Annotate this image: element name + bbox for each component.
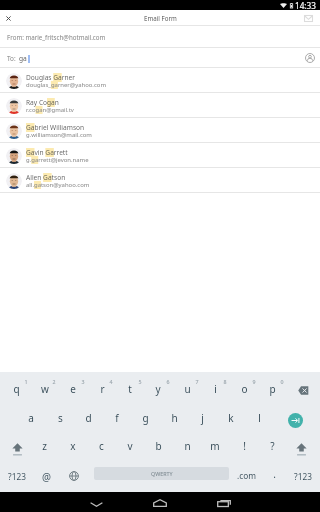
button[interactable]: o — [230, 376, 258, 402]
staticText: t — [128, 382, 132, 396]
button[interactable]: Gavin Garrett — [0, 143, 320, 168]
staticText: 14:33 — [295, 0, 316, 10]
button[interactable]: QWERTY — [94, 467, 229, 480]
staticText: 8 — [223, 378, 227, 385]
button[interactable]: c — [87, 433, 115, 459]
button[interactable]: Allen Gatson — [0, 168, 320, 193]
button[interactable]: l — [245, 405, 273, 431]
button[interactable]: h — [160, 405, 188, 431]
button[interactable]: 6 — [154, 368, 182, 394]
button[interactable]: Back — [64, 492, 128, 512]
button[interactable]: Next field — [288, 413, 303, 428]
staticText: 7 — [195, 378, 199, 385]
button[interactable]: 9 — [240, 368, 268, 394]
staticText: 2 — [52, 378, 56, 385]
staticText: j — [201, 411, 204, 425]
button[interactable]: Shift — [3, 436, 31, 462]
button[interactable]: n — [173, 433, 201, 459]
staticText: To: — [7, 54, 18, 63]
button[interactable]: s — [46, 405, 74, 431]
staticText: r.cogan@gmail.tv — [26, 106, 74, 114]
staticText: . — [273, 467, 276, 481]
button[interactable]: p — [258, 376, 286, 402]
button[interactable]: 4 — [97, 368, 125, 394]
button[interactable]: g — [131, 405, 159, 431]
button[interactable]: 5 — [126, 368, 154, 394]
button[interactable]: .com — [232, 462, 260, 488]
button[interactable]: Home — [128, 492, 192, 512]
button[interactable]: Backspace — [289, 377, 317, 403]
button[interactable]: j — [188, 405, 216, 431]
staticText: v — [127, 439, 133, 453]
staticText: Allen Gatson — [26, 173, 66, 182]
button[interactable]: . — [260, 461, 288, 487]
staticText: 1 — [24, 378, 28, 385]
button[interactable]: ?123 — [289, 463, 317, 489]
button[interactable]: ? — [258, 433, 286, 459]
button[interactable]: 0 — [268, 368, 296, 394]
button[interactable]: f — [103, 405, 131, 431]
button[interactable]: d — [74, 405, 102, 431]
button[interactable]: r — [88, 376, 116, 402]
button[interactable]: ! — [230, 433, 258, 459]
staticText: @ — [42, 470, 51, 484]
button[interactable]: 8 — [211, 368, 239, 394]
staticText: Douglas Garner — [26, 73, 75, 82]
button[interactable]: u — [173, 376, 201, 402]
staticText: From: marie_fritsch@hotmail.com — [7, 33, 106, 41]
button[interactable]: m — [201, 433, 229, 459]
button[interactable]: 1 — [12, 368, 40, 394]
button[interactable]: ?123 — [3, 463, 31, 489]
button[interactable]: x — [59, 433, 87, 459]
staticText: m — [210, 439, 220, 453]
button[interactable]: Change language — [60, 463, 88, 489]
button[interactable]: To: — [0, 48, 320, 68]
button[interactable]: Send — [296, 10, 320, 26]
button[interactable]: z — [30, 433, 58, 459]
button[interactable]: Close — [0, 10, 17, 26]
button[interactable]: @ — [32, 464, 60, 490]
staticText: e — [70, 382, 76, 396]
staticText: d — [85, 411, 92, 425]
staticText: c — [99, 439, 104, 453]
staticText: q — [13, 382, 20, 396]
button[interactable]: 7 — [183, 368, 211, 394]
staticText: Gavin Garrett — [26, 148, 68, 157]
staticText: QWERTY — [151, 470, 173, 477]
button[interactable]: y — [144, 376, 172, 402]
staticText: w — [41, 382, 49, 396]
button[interactable]: e — [59, 376, 87, 402]
button[interactable]: Gabriel Williamson — [0, 118, 320, 143]
button[interactable]: Douglas Garner — [0, 68, 320, 93]
staticText: g — [142, 411, 149, 425]
button[interactable]: From: marie_fritsch@hotmail.com — [0, 26, 320, 48]
button[interactable]: 2 — [40, 368, 68, 394]
staticText: l — [258, 411, 261, 425]
button[interactable]: Recent apps — [192, 492, 256, 512]
staticText: ?123 — [8, 471, 26, 482]
staticText: g.williamson@mail.com — [26, 131, 92, 139]
staticText: 9 — [252, 378, 256, 385]
staticText: a — [28, 411, 34, 425]
button[interactable]: a — [17, 405, 45, 431]
button[interactable]: t — [116, 376, 144, 402]
staticText: 4 — [109, 378, 113, 385]
button[interactable]: b — [144, 433, 172, 459]
staticText: f — [115, 411, 119, 425]
button[interactable]: w — [31, 376, 59, 402]
staticText: ? — [270, 439, 275, 453]
staticText: i — [214, 382, 217, 396]
staticText: s — [58, 411, 63, 425]
button[interactable]: q — [2, 376, 30, 402]
button[interactable]: Ray Cogan — [0, 93, 320, 118]
button[interactable]: Add recipient — [300, 48, 320, 68]
staticText: Gabriel Williamson — [26, 123, 85, 132]
button[interactable]: 3 — [69, 368, 97, 394]
button[interactable]: v — [116, 433, 144, 459]
staticText: 6 — [166, 378, 170, 385]
button[interactable]: Shift — [287, 436, 315, 462]
button[interactable]: k — [217, 405, 245, 431]
staticText: g.garrett@jevon.name — [26, 156, 89, 164]
button[interactable]: i — [201, 376, 229, 402]
staticText: all.gatson@yahoo.com — [26, 181, 90, 189]
